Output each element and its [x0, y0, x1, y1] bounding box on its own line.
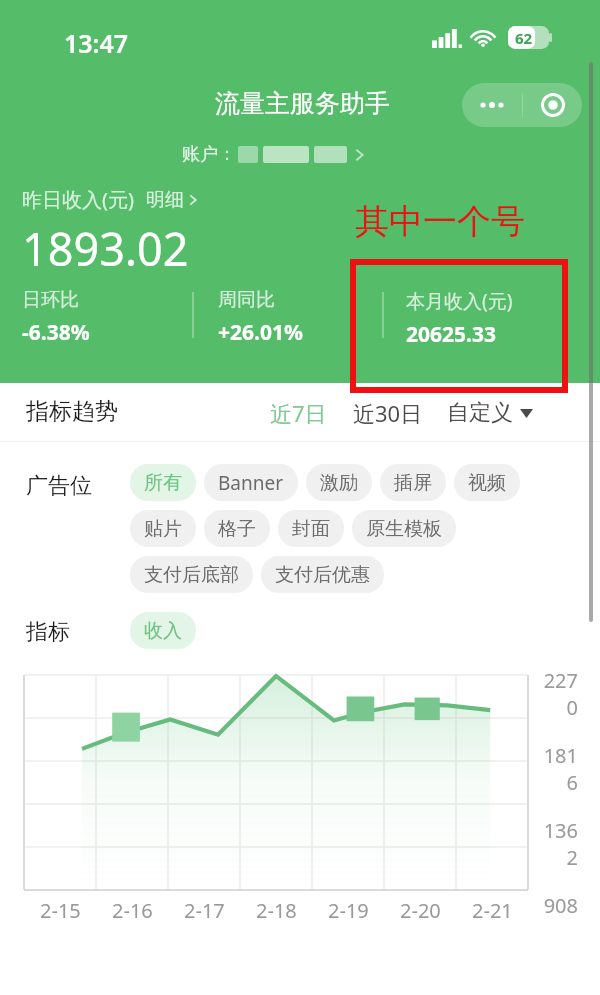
- staticText: 日环比: [22, 288, 79, 312]
- staticText: 2-21: [472, 897, 513, 924]
- staticText: 2270: [536, 667, 578, 721]
- staticText: 封面: [292, 517, 330, 541]
- staticText: 自定义: [447, 399, 513, 427]
- staticText: 所有: [144, 471, 182, 495]
- staticText: 2-18: [256, 897, 297, 924]
- button[interactable]: Close mini program: [523, 83, 582, 127]
- staticText: 20625.33: [406, 320, 496, 349]
- button[interactable]: More options: [462, 83, 522, 127]
- staticText: 13:47: [64, 26, 129, 60]
- staticText: -6.38%: [22, 318, 90, 347]
- staticText: 视频: [468, 471, 506, 495]
- button[interactable]: 自定义: [447, 399, 533, 427]
- staticText: 账户：: [182, 143, 236, 166]
- button[interactable]: 本月收入(元): [406, 288, 513, 349]
- button[interactable]: 收入: [130, 612, 196, 649]
- staticText: 支付后底部: [144, 563, 239, 587]
- staticText: 2-15: [40, 897, 81, 924]
- button[interactable]: Banner: [204, 464, 298, 501]
- staticText: 收入: [144, 619, 182, 643]
- staticText: 明细: [146, 188, 184, 212]
- button[interactable]: 昨日收入(元): [22, 186, 197, 213]
- button[interactable]: 周同比: [218, 288, 303, 347]
- button[interactable]: 激励: [306, 464, 372, 501]
- staticText: 激励: [320, 471, 358, 495]
- button[interactable]: 原生模板: [352, 510, 456, 547]
- staticText: 近30日: [353, 398, 423, 428]
- staticText: 支付后优惠: [275, 563, 370, 587]
- button[interactable]: 支付后优惠: [261, 556, 384, 593]
- button[interactable]: 支付后底部: [130, 556, 253, 593]
- staticText: 流量主服务助手: [215, 88, 390, 119]
- staticText: 指标: [26, 618, 70, 646]
- staticText: 2-17: [184, 897, 225, 924]
- button[interactable]: 近30日: [353, 398, 423, 428]
- staticText: 插屏: [394, 471, 432, 495]
- staticText: Banner: [218, 470, 284, 496]
- staticText: 1816: [536, 742, 578, 796]
- staticText: 原生模板: [366, 517, 442, 541]
- button[interactable]: 封面: [278, 510, 344, 547]
- button[interactable]: 日环比: [22, 288, 90, 347]
- staticText: 指标趋势: [26, 397, 118, 426]
- button[interactable]: 插屏: [380, 464, 446, 501]
- staticText: 2-16: [112, 897, 153, 924]
- staticText: 908: [536, 892, 578, 919]
- staticText: 其中一个号: [355, 200, 525, 243]
- staticText: 2-20: [400, 897, 441, 924]
- button[interactable]: 格子: [204, 510, 270, 547]
- staticText: 1893.02: [22, 218, 189, 279]
- button[interactable]: 近7日: [270, 398, 327, 428]
- staticText: 贴片: [144, 517, 182, 541]
- staticText: 本月收入(元): [406, 288, 513, 314]
- staticText: 62: [515, 28, 533, 48]
- staticText: 昨日收入(元): [22, 186, 134, 213]
- staticText: 1362: [536, 817, 578, 871]
- staticText: 2-19: [328, 897, 369, 924]
- button[interactable]: 贴片: [130, 510, 196, 547]
- staticText: +26.01%: [218, 318, 303, 347]
- button[interactable]: 视频: [454, 464, 520, 501]
- staticText: 广告位: [26, 472, 92, 500]
- staticText: 周同比: [218, 288, 275, 312]
- staticText: 近7日: [270, 398, 327, 428]
- button[interactable]: 所有: [130, 464, 196, 501]
- button[interactable]: 账户：: [182, 143, 364, 166]
- staticText: 格子: [218, 517, 256, 541]
